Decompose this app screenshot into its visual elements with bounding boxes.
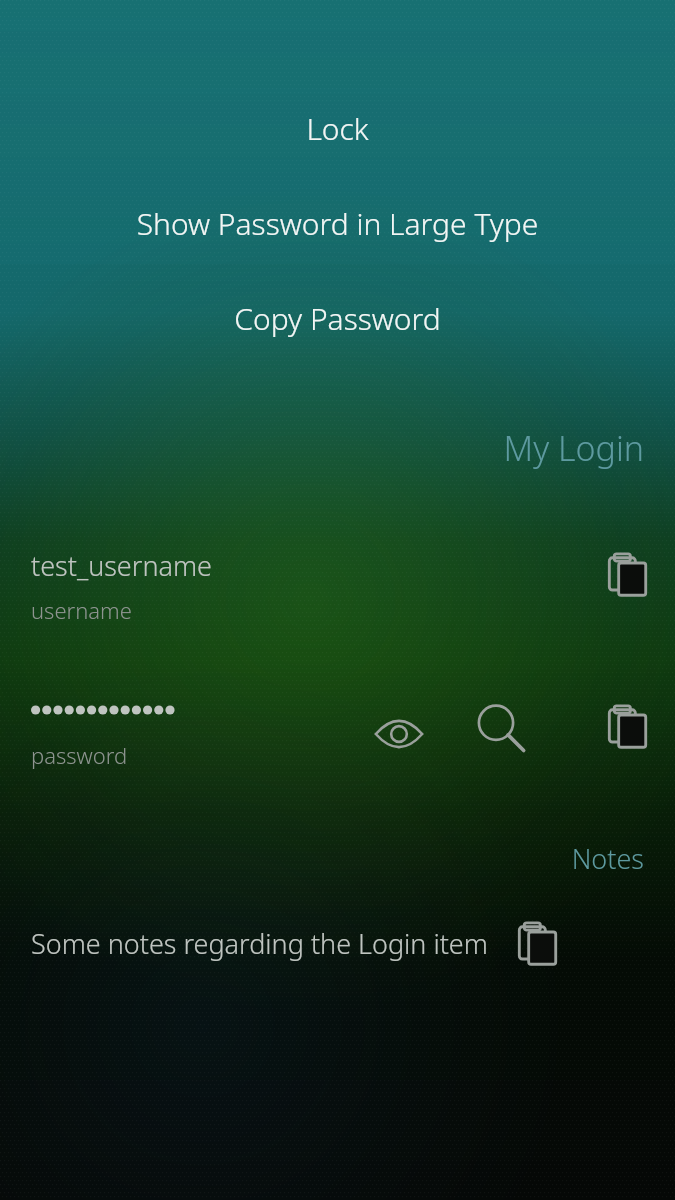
staticText: test_username	[31, 547, 212, 584]
staticText: username	[31, 595, 132, 625]
staticText: Notes	[0, 840, 644, 877]
button[interactable]: Lock	[0, 104, 675, 153]
staticText: Lock	[0, 108, 675, 149]
button[interactable]: password	[0, 692, 675, 796]
button[interactable]: Copy password	[601, 702, 653, 754]
staticText: password	[31, 740, 128, 770]
button[interactable]: Search password	[472, 700, 532, 760]
other: Copy notes	[511, 919, 563, 971]
button[interactable]: Copy username	[601, 550, 653, 602]
staticText: Show Password in Large Type	[0, 203, 675, 244]
staticText: Some notes regarding the Login item	[31, 925, 501, 962]
button[interactable]: Show password	[370, 705, 428, 763]
button[interactable]: Show Password in Large Type	[0, 199, 675, 248]
button[interactable]: test_username	[0, 547, 675, 651]
staticText: My Login	[0, 425, 644, 471]
button[interactable]: Some notes regarding the Login item	[0, 925, 675, 977]
button[interactable]: Copy Password	[0, 294, 675, 343]
staticText: Copy Password	[0, 298, 675, 339]
